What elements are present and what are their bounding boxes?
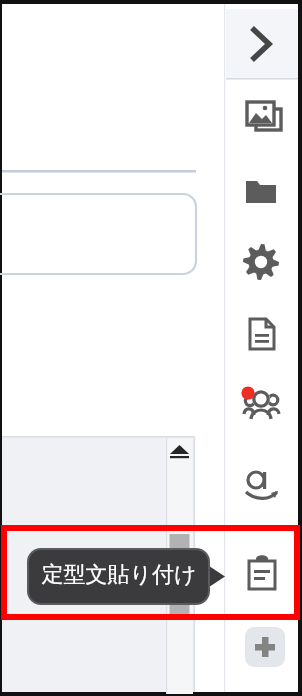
button[interactable]: Document	[240, 312, 288, 360]
button[interactable]: Amazon	[240, 462, 288, 510]
button[interactable]: Expand panel	[226, 9, 300, 79]
button[interactable]: Settings	[240, 240, 288, 288]
button[interactable]: Paste template	[240, 550, 288, 598]
button[interactable]: Contacts	[240, 382, 288, 430]
button[interactable]: Add	[245, 627, 285, 667]
staticText: 定型文貼り付け	[33, 561, 205, 593]
button[interactable]: Folder	[240, 170, 288, 218]
button[interactable]: Images	[240, 94, 288, 142]
